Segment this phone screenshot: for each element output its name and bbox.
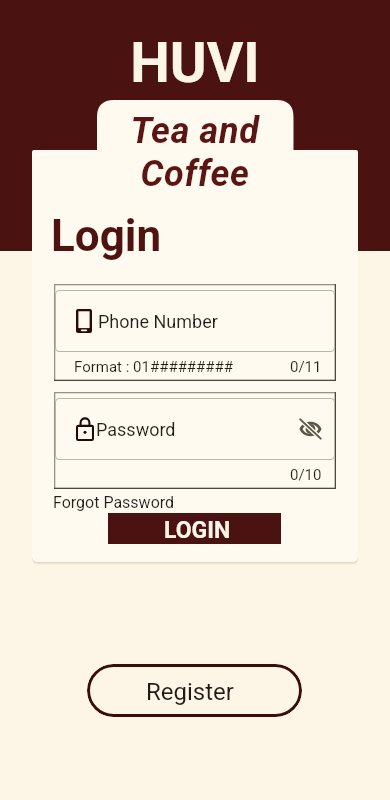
other: Phone number [76, 309, 92, 333]
staticText: Register [146, 678, 234, 706]
staticText: Forgot Password [53, 493, 175, 512]
staticText: 0/10 [290, 466, 322, 484]
button[interactable]: Password [55, 398, 335, 460]
other: Password [76, 417, 94, 441]
button[interactable]: Forgot Password [52, 493, 176, 512]
staticText: Tea and Coffee [0, 110, 390, 195]
staticText: Format : 01######### [74, 358, 234, 376]
button[interactable]: LOGIN [108, 513, 281, 544]
staticText: Phone Number [98, 311, 218, 332]
button[interactable]: Phone number [55, 290, 335, 352]
staticText: Password [96, 419, 176, 440]
button[interactable]: Register [87, 664, 302, 717]
staticText: 0/11 [290, 358, 322, 376]
other: Show password [299, 419, 322, 439]
staticText: Login [51, 210, 162, 262]
staticText: LOGIN [164, 517, 231, 544]
staticText: HUVI [0, 30, 390, 96]
